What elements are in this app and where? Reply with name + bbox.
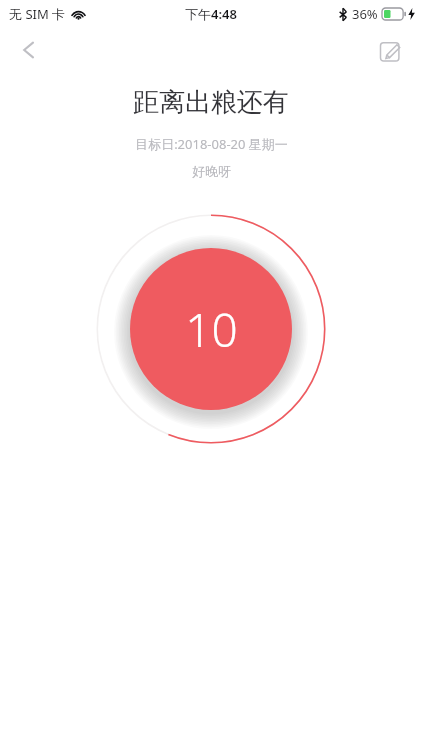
staticText: 距离出粮还有 bbox=[133, 86, 289, 119]
staticText: 好晚呀 bbox=[192, 163, 231, 179]
staticText: 无 SIM 卡 bbox=[9, 5, 66, 23]
staticText: 10 bbox=[185, 298, 238, 361]
button[interactable]: Back bbox=[6, 28, 52, 72]
staticText: 36% bbox=[352, 5, 378, 23]
button[interactable]: 10 bbox=[130, 248, 292, 410]
staticText: 目标日:2018-08-20 星期一 bbox=[135, 135, 288, 153]
staticText: 下午4:48 bbox=[185, 5, 237, 23]
button[interactable]: Edit bbox=[370, 30, 410, 70]
